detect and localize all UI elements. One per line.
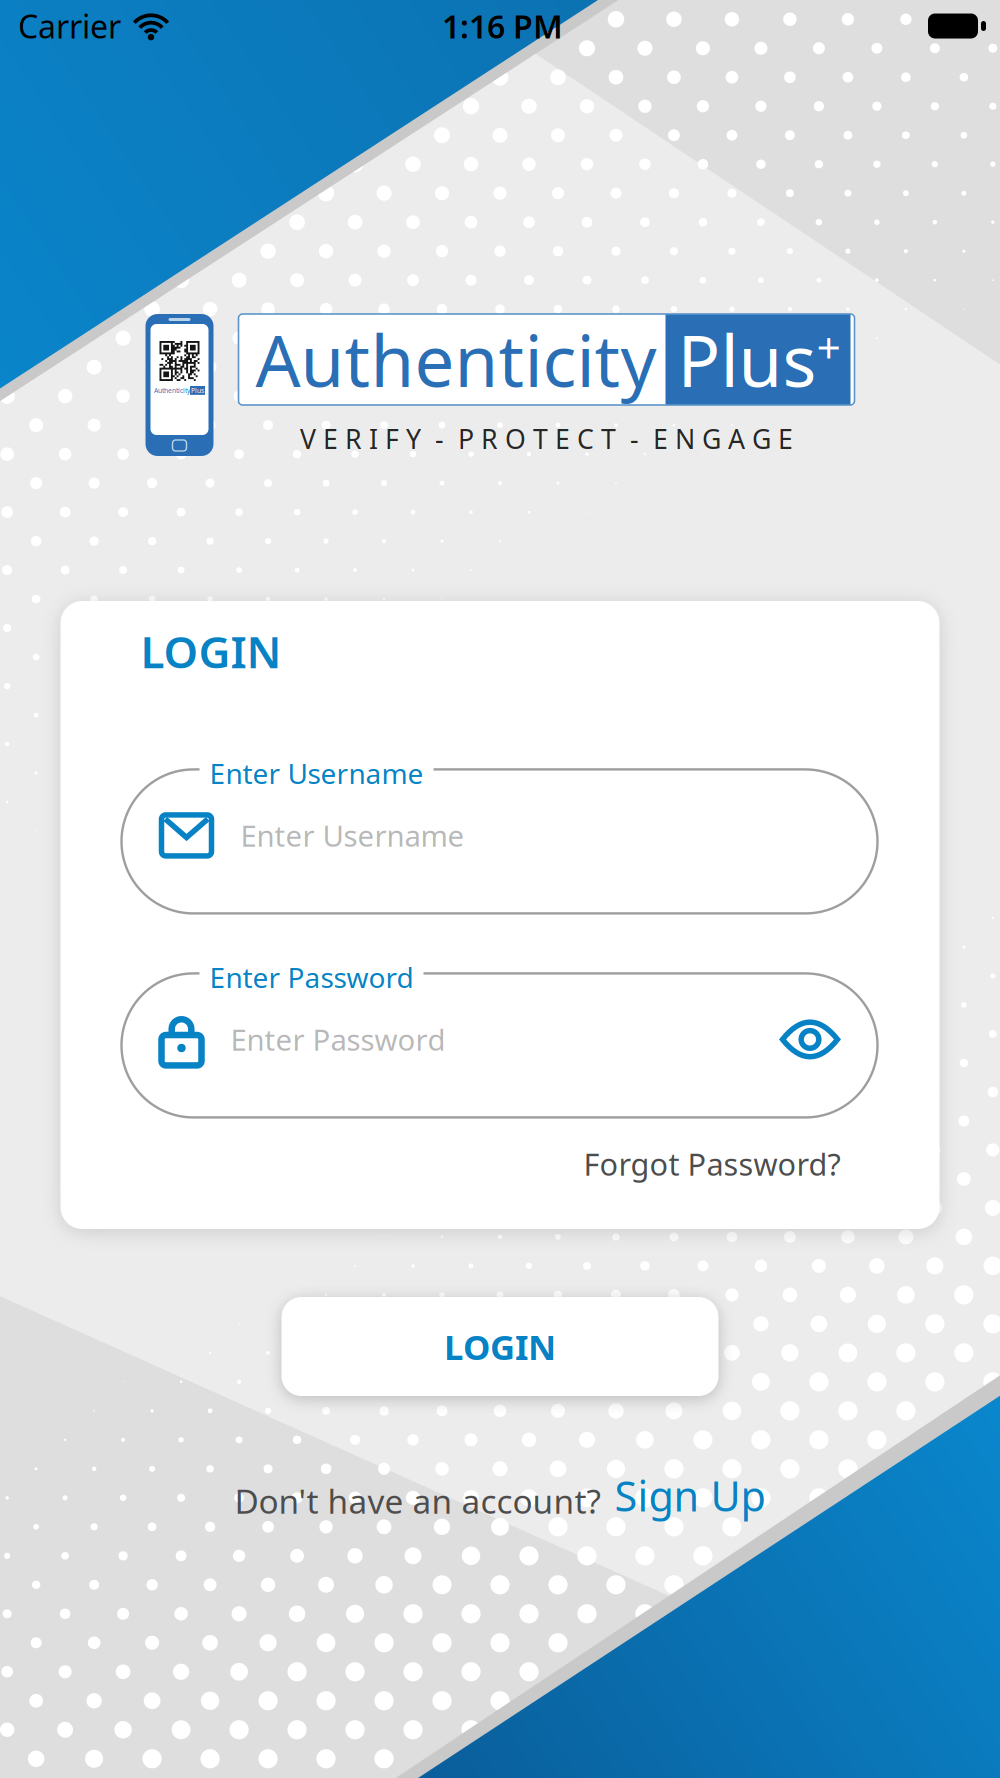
button[interactable]: Forgot Password? [583,1143,840,1184]
button[interactable]: LOGIN [281,1297,718,1396]
staticText: Sign Up [614,1468,765,1523]
staticText: Plus [677,313,816,406]
staticText: Carrier [18,5,121,47]
staticText: LOGIN [444,1323,556,1369]
staticText: Don't have an account? [234,1479,600,1523]
staticText: Authenticity [255,313,656,406]
staticText: Enter Password [230,1020,445,1059]
staticText: Enter Password [209,958,413,996]
staticText: LOGIN [140,622,281,680]
staticText: Enter Username [209,754,423,792]
staticText: + [816,319,840,375]
staticText: V E R I F Y - P R O T E C T - E N G A G … [300,421,793,456]
staticText: Plus [191,386,204,395]
staticText: Enter Username [240,816,464,855]
staticText: 1:16 PM [442,5,563,47]
staticText: Authenticity [154,386,190,395]
staticText: Forgot Password? [583,1143,840,1184]
button[interactable]: Sign Up [600,1468,765,1523]
